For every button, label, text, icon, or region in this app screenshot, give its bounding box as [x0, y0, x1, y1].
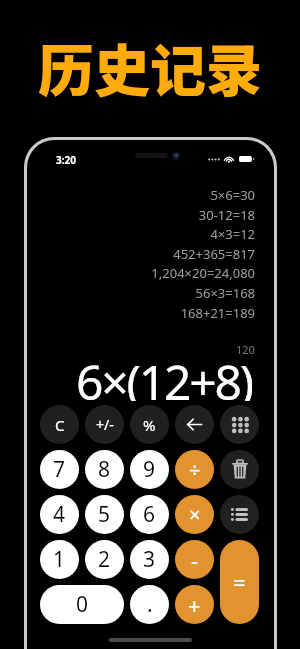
staticText: 0 [76, 590, 89, 619]
staticText: = [233, 567, 246, 597]
staticText: 120 [236, 342, 255, 356]
staticText: 6×(12+8) [76, 349, 252, 401]
button[interactable]: . [130, 585, 169, 624]
staticText: - [191, 545, 199, 575]
staticText: 8 [98, 455, 111, 484]
staticText: . [147, 590, 153, 619]
button[interactable]: 5 [85, 495, 124, 534]
button[interactable]: C [40, 405, 79, 444]
button[interactable]: 7 [40, 450, 79, 489]
staticText: 452+365=817 [173, 245, 255, 263]
staticText: 7 [53, 455, 66, 484]
staticText: × [189, 501, 201, 528]
button[interactable]: +/- [85, 405, 124, 444]
staticText: 30-12=18 [198, 206, 255, 224]
staticText: 6 [143, 500, 156, 529]
button[interactable]: 6 [130, 495, 169, 534]
button[interactable]: + [175, 585, 214, 624]
button[interactable]: 9 [130, 450, 169, 489]
staticText: 4×3=12 [210, 225, 255, 243]
staticText: 9 [143, 455, 156, 484]
button[interactable]: 4 [40, 495, 79, 534]
staticText: 3 [143, 545, 156, 574]
button[interactable]: History [220, 495, 259, 534]
button[interactable]: Clear history [220, 450, 259, 489]
button[interactable]: = [220, 540, 259, 624]
staticText: + [188, 590, 201, 620]
button[interactable]: % [130, 405, 169, 444]
button[interactable]: ÷ [175, 450, 214, 489]
button[interactable]: 0 [40, 585, 124, 624]
staticText: ÷ [189, 456, 201, 483]
staticText: 5 [98, 500, 111, 529]
button[interactable]: × [175, 495, 214, 534]
button[interactable]: - [175, 540, 214, 579]
button[interactable]: Keypad [220, 405, 259, 444]
staticText: 历史记录 [38, 26, 262, 107]
staticText: 5×6=30 [210, 186, 255, 204]
button[interactable]: Backspace [175, 405, 214, 444]
staticText: % [143, 415, 156, 435]
staticText: 1,204×20=24,080 [151, 264, 255, 282]
staticText: 3:20 [56, 153, 76, 167]
button[interactable]: 1 [40, 540, 79, 579]
button[interactable]: 2 [85, 540, 124, 579]
staticText: 4 [53, 500, 66, 529]
staticText: C [55, 415, 65, 435]
button[interactable]: 8 [85, 450, 124, 489]
staticText: 56×3=168 [195, 284, 255, 302]
staticText: 2 [98, 545, 111, 574]
staticText: 1 [53, 545, 66, 574]
staticText: +/- [96, 415, 114, 434]
staticText: 168+21=189 [180, 304, 255, 322]
button[interactable]: 3 [130, 540, 169, 579]
